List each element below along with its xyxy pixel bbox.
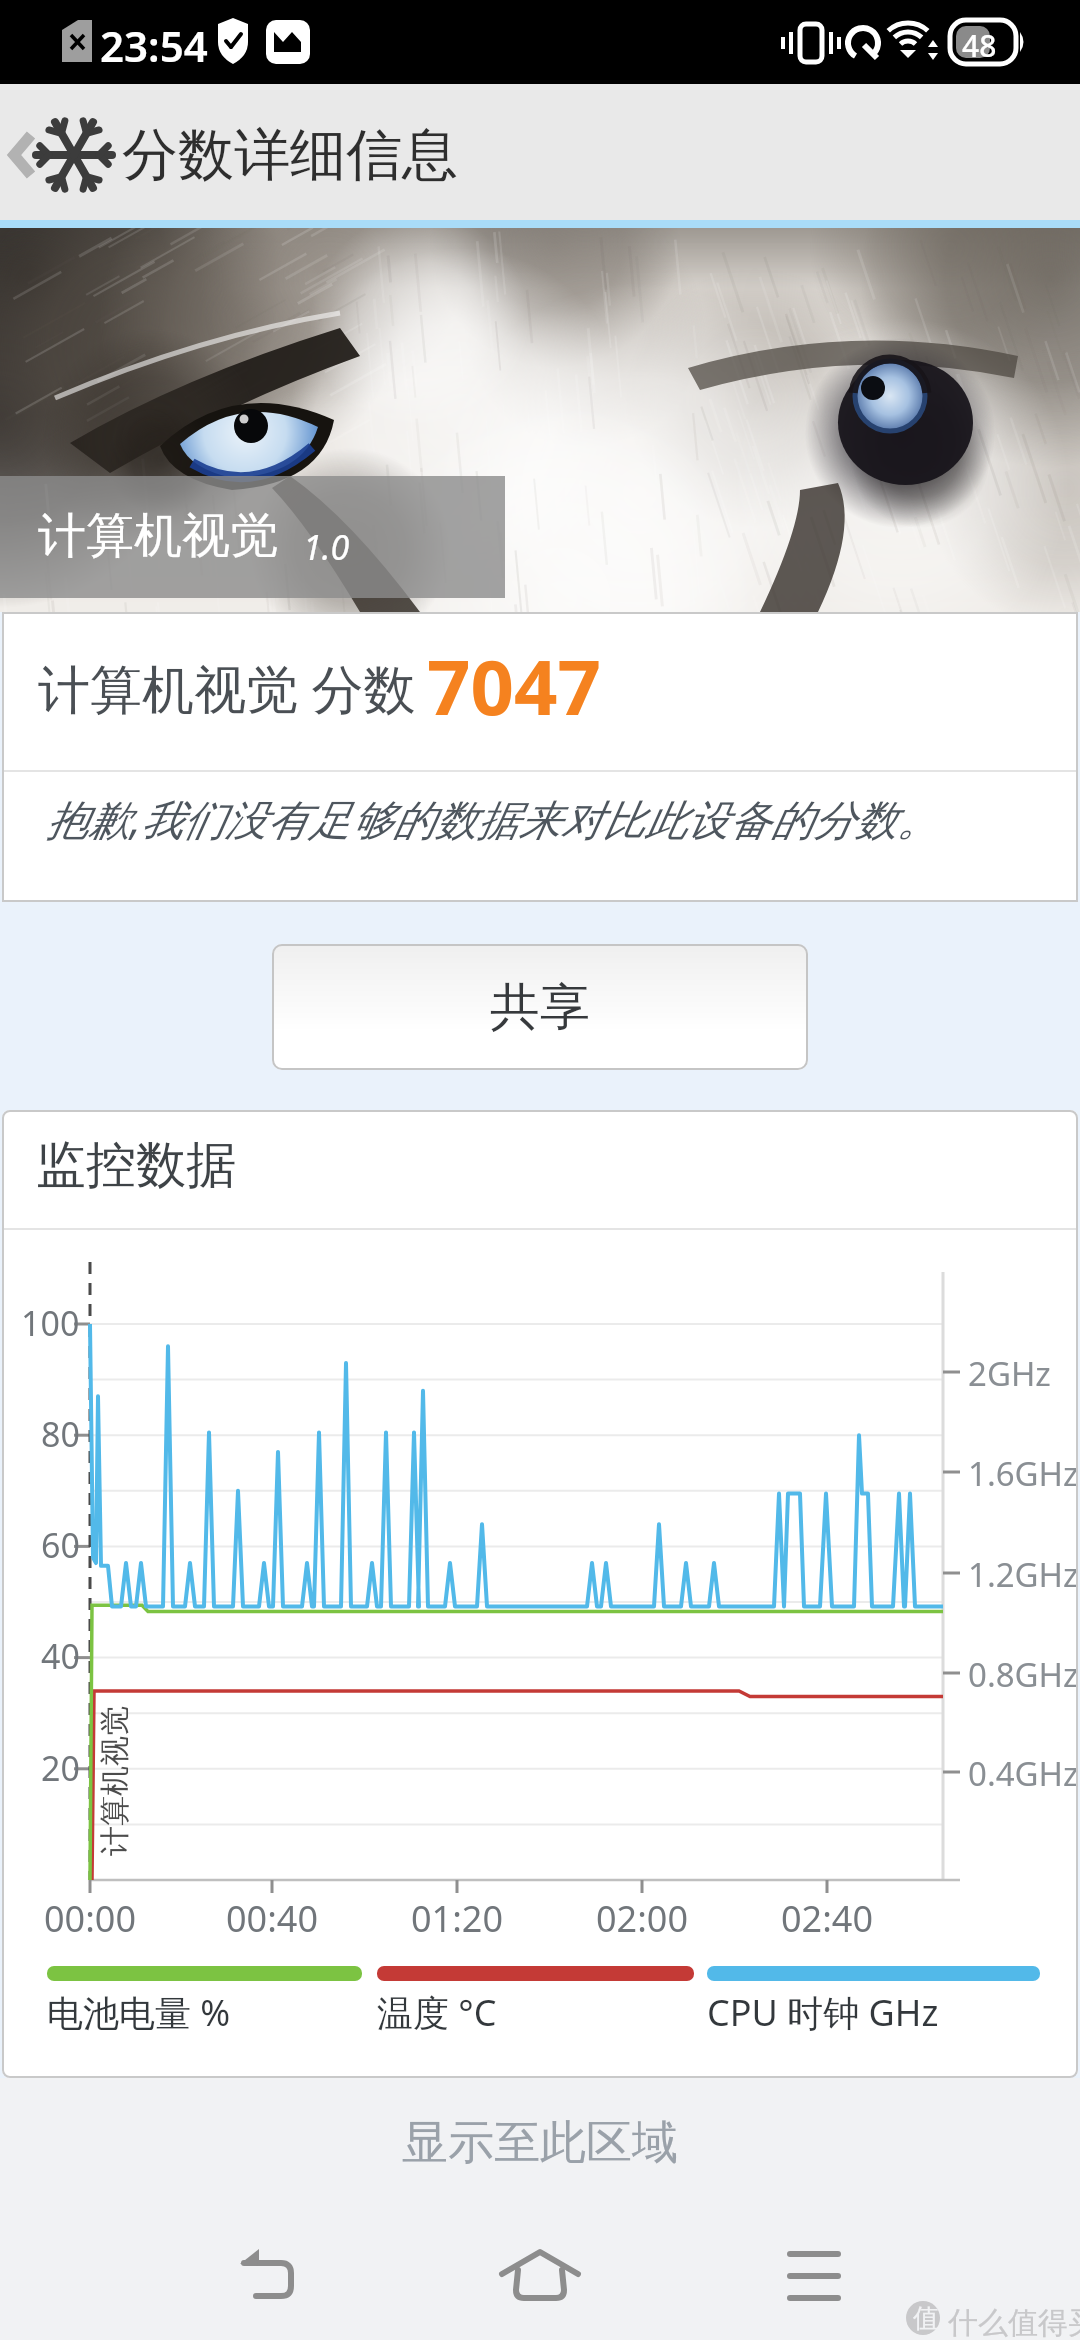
staticText: 40 <box>41 1633 80 1679</box>
staticText: 20 <box>41 1745 80 1791</box>
staticText: 显示至此区域 <box>402 2114 678 2172</box>
staticText: 2GHz <box>968 1351 1051 1396</box>
staticText: 00:00 <box>44 1894 137 1943</box>
staticText: 1.6GHz <box>968 1451 1079 1496</box>
staticText: 1.2GHz <box>968 1552 1079 1597</box>
staticText: 什么值得买 <box>948 2304 1080 2340</box>
staticText: 1.0 <box>303 524 350 570</box>
staticText: 计算机视觉 <box>96 1706 134 1856</box>
staticText: 23:54 <box>100 17 208 74</box>
staticText: 温度 °C <box>377 1988 497 2037</box>
staticText: 抱歉,我们没有足够的数据来对比此设备的分数。 <box>46 790 939 847</box>
button[interactable] <box>215 2228 325 2318</box>
staticText: 100 <box>21 1300 80 1346</box>
button[interactable] <box>757 2228 867 2318</box>
staticText: 0.8GHz <box>968 1652 1079 1697</box>
staticText: 02:00 <box>596 1894 689 1943</box>
staticText: CPU 时钟 GHz <box>707 1988 939 2037</box>
staticText: 7047 <box>427 634 601 738</box>
button[interactable] <box>485 2228 595 2318</box>
staticText: 80 <box>41 1411 80 1457</box>
staticText: 02:40 <box>781 1894 874 1943</box>
staticText: 计算机视觉 分数 <box>38 652 416 723</box>
staticText: 48 <box>962 25 997 66</box>
staticText: 0.4GHz <box>968 1751 1079 1796</box>
staticText: 00:40 <box>226 1894 319 1943</box>
staticText: 分数详细信息 <box>122 120 458 191</box>
button[interactable] <box>0 104 50 204</box>
button[interactable]: 共享 <box>272 944 808 1070</box>
staticText: 共享 <box>490 976 590 1039</box>
staticText: 01:20 <box>411 1894 504 1943</box>
staticText: 监控数据 <box>36 1134 236 1197</box>
staticText: 60 <box>41 1522 80 1568</box>
staticText: 计算机视觉 <box>38 506 278 566</box>
staticText: 电池电量 % <box>47 1988 231 2037</box>
staticText: 值 <box>913 2302 939 2335</box>
